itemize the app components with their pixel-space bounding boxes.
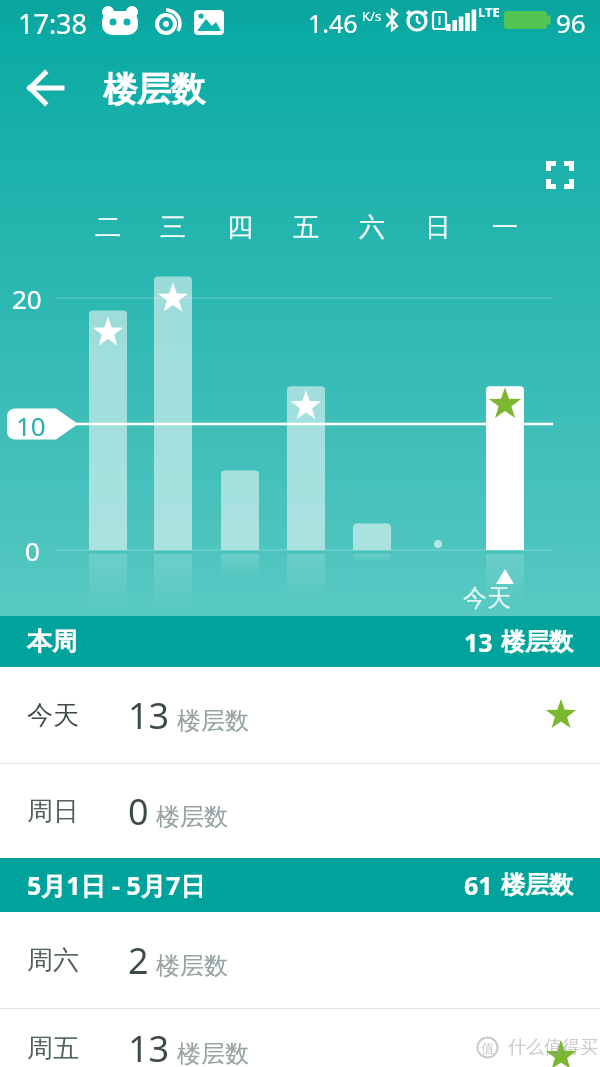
staticText: 2 (128, 936, 149, 985)
staticText: 13 (128, 691, 170, 740)
staticText: 1.46 (308, 6, 358, 40)
staticText: 0 (128, 787, 149, 836)
staticText: 5月1日 - 5月7日 (27, 868, 206, 902)
staticText: 五 (293, 211, 319, 244)
staticText: LTE (478, 3, 500, 21)
staticText: 今天 (463, 583, 511, 613)
staticText: 日 (425, 211, 451, 244)
staticText: 二 (95, 211, 121, 244)
staticText: 今天 (27, 699, 79, 732)
staticText: 10 (16, 408, 46, 443)
staticText: 周五 (27, 1032, 79, 1065)
staticText: 楼层数 (156, 802, 228, 832)
staticText: 六 (359, 211, 385, 244)
staticText: 13 (464, 625, 493, 659)
staticText: 楼层数 (103, 68, 205, 111)
button[interactable]: 周日 (0, 764, 600, 858)
staticText: 楼层数 (177, 1039, 249, 1067)
button[interactable]: 本周 (0, 616, 600, 667)
button[interactable]: 5月1日 - 5月7日 (0, 858, 600, 912)
staticText: 0 (25, 533, 40, 568)
staticText: 本周 (27, 626, 77, 657)
staticText: 值 (481, 1040, 494, 1056)
staticText: 周日 (27, 795, 79, 828)
staticText: 楼层数 (156, 951, 228, 981)
staticText: K/s (362, 7, 382, 25)
button[interactable]: 周六 (0, 912, 600, 1008)
staticText: 13 (128, 1024, 170, 1067)
staticText: 楼层数 (501, 627, 573, 657)
button[interactable]: 今天 (0, 667, 600, 763)
button[interactable] (14, 60, 78, 116)
staticText: 三 (160, 211, 186, 244)
staticText: 61 (464, 868, 493, 902)
button[interactable]: 周五 (0, 1019, 600, 1067)
staticText: 周六 (27, 944, 79, 977)
staticText: 96 (556, 5, 586, 40)
staticText: 一 (492, 211, 518, 244)
staticText: 四 (227, 211, 253, 244)
staticText: 什么值得买 (508, 1036, 598, 1059)
staticText: 20 (12, 281, 42, 316)
staticText: 17:38 (18, 5, 88, 42)
button[interactable] (536, 151, 584, 199)
staticText: 楼层数 (501, 870, 573, 900)
staticText: 楼层数 (177, 706, 249, 736)
